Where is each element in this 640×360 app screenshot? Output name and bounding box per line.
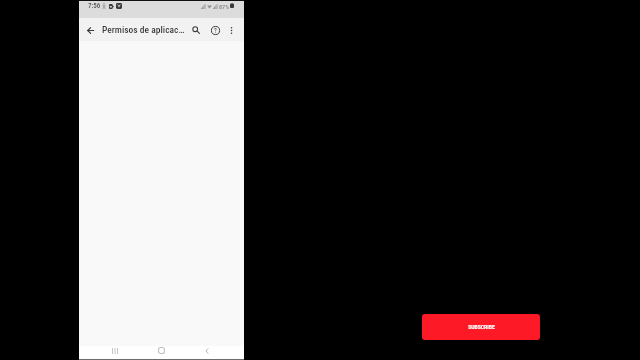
button[interactable]: Back — [190, 346, 224, 359]
button[interactable]: Home — [144, 346, 178, 359]
staticText: SUBSCRIBE — [468, 324, 495, 330]
staticText: Permisos de aplicac… — [102, 24, 185, 35]
button[interactable]: Recent apps — [98, 346, 132, 359]
staticText: ? — [214, 27, 217, 35]
button[interactable]: More options — [223, 19, 240, 40]
staticText: 87% — [219, 3, 230, 10]
button[interactable]: SUBSCRIBE — [422, 314, 540, 340]
button[interactable]: Back — [81, 19, 99, 40]
staticText: 7:56 — [88, 2, 101, 10]
button[interactable]: Help — [206, 19, 225, 40]
button[interactable]: Search — [186, 19, 205, 40]
